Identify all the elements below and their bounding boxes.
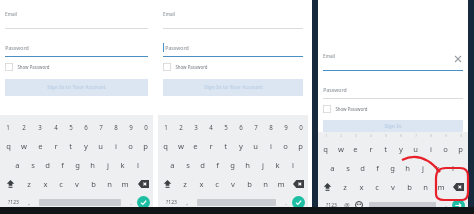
button[interactable]: Shift: [158, 174, 177, 193]
button[interactable]: e: [348, 139, 363, 158]
button[interactable]: 3: [32, 117, 48, 136]
button[interactable]: j: [255, 155, 270, 174]
button[interactable]: o: [438, 139, 453, 158]
button[interactable]: t: [378, 139, 393, 158]
button[interactable]: Done: [137, 196, 150, 209]
button[interactable]: .: [125, 193, 137, 212]
button[interactable]: b: [85, 174, 101, 193]
button[interactable]: c: [369, 177, 385, 196]
button[interactable]: ?123: [3, 193, 23, 212]
button[interactable]: Sign In to Your Account: [163, 79, 303, 96]
button[interactable]: 5: [378, 132, 393, 139]
button[interactable]: d: [355, 158, 370, 177]
button[interactable]: 6: [233, 117, 248, 136]
button[interactable]: s: [340, 158, 355, 177]
button[interactable]: Emoji: [353, 196, 365, 214]
button[interactable]: h: [85, 155, 100, 174]
button[interactable]: m: [433, 177, 449, 196]
button[interactable]: 8: [423, 132, 438, 139]
button[interactable]: 0: [453, 132, 468, 139]
button[interactable]: w: [333, 139, 348, 158]
button[interactable]: 6: [393, 132, 408, 139]
button[interactable]: e: [32, 136, 48, 155]
button[interactable]: 1: [0, 117, 16, 136]
button[interactable]: 8: [263, 117, 278, 136]
button[interactable]: Show Password: [323, 105, 368, 113]
button[interactable]: 7: [408, 132, 423, 139]
button[interactable]: Shift: [318, 177, 337, 196]
button[interactable]: 4: [48, 117, 63, 136]
button[interactable]: 2: [333, 132, 348, 139]
button[interactable]: z: [337, 177, 353, 196]
button[interactable]: f: [55, 155, 70, 174]
button[interactable]: v: [225, 174, 241, 193]
button[interactable]: Sign In: [323, 120, 463, 132]
button[interactable]: Show Password: [163, 63, 208, 71]
button[interactable]: i: [108, 136, 123, 155]
button[interactable]: i: [263, 136, 278, 155]
button[interactable]: 0: [138, 117, 153, 136]
button[interactable]: z: [177, 174, 193, 193]
button[interactable]: n: [417, 177, 433, 196]
button[interactable]: 1: [158, 117, 173, 136]
button[interactable]: Clear: [453, 54, 463, 64]
button[interactable]: r: [203, 136, 218, 155]
button[interactable]: k: [430, 158, 445, 177]
button[interactable]: 5: [218, 117, 233, 136]
button[interactable]: p: [138, 136, 153, 155]
button[interactable]: c: [209, 174, 225, 193]
button[interactable]: b: [241, 174, 257, 193]
button[interactable]: f: [210, 155, 225, 174]
button[interactable]: j: [415, 158, 430, 177]
button[interactable]: 5: [63, 117, 78, 136]
button[interactable]: n: [101, 174, 117, 193]
button[interactable]: r: [363, 139, 378, 158]
button[interactable]: y: [78, 136, 93, 155]
button[interactable]: Shift: [0, 174, 21, 193]
button[interactable]: r: [48, 136, 63, 155]
button[interactable]: Password: [163, 38, 303, 56]
button[interactable]: v: [385, 177, 401, 196]
button[interactable]: Backspace: [133, 174, 153, 193]
button[interactable]: c: [53, 174, 69, 193]
button[interactable]: 0: [293, 117, 308, 136]
button[interactable]: 8: [108, 117, 123, 136]
button[interactable]: m: [273, 174, 289, 193]
button[interactable]: Email: [5, 6, 148, 28]
button[interactable]: y: [393, 139, 408, 158]
button[interactable]: 6: [78, 117, 93, 136]
button[interactable]: Backspace: [449, 177, 468, 196]
button[interactable]: Sign In to Your Account: [5, 79, 148, 96]
button[interactable]: ,: [23, 193, 35, 212]
button[interactable]: 7: [93, 117, 108, 136]
button[interactable]: d: [195, 155, 210, 174]
button[interactable]: f: [370, 158, 385, 177]
button[interactable]: i: [423, 139, 438, 158]
button[interactable]: l: [130, 155, 145, 174]
button[interactable]: g: [225, 155, 240, 174]
button[interactable]: Space: [369, 202, 436, 209]
button[interactable]: 9: [123, 117, 138, 136]
button[interactable]: Email: [163, 6, 303, 28]
button[interactable]: s: [25, 155, 40, 174]
button[interactable]: t: [63, 136, 78, 155]
button[interactable]: b: [401, 177, 417, 196]
button[interactable]: x: [37, 174, 53, 193]
button[interactable]: x: [353, 177, 369, 196]
button[interactable]: u: [93, 136, 108, 155]
button[interactable]: 1: [318, 132, 333, 139]
button[interactable]: 3: [348, 132, 363, 139]
button[interactable]: .: [440, 196, 452, 214]
button[interactable]: w: [173, 136, 188, 155]
button[interactable]: d: [40, 155, 55, 174]
button[interactable]: .: [280, 193, 292, 212]
button[interactable]: n: [257, 174, 273, 193]
button[interactable]: s: [180, 155, 195, 174]
button[interactable]: u: [248, 136, 263, 155]
button[interactable]: h: [400, 158, 415, 177]
button[interactable]: 9: [278, 117, 293, 136]
button[interactable]: h: [240, 155, 255, 174]
button[interactable]: t: [218, 136, 233, 155]
button[interactable]: 9: [438, 132, 453, 139]
